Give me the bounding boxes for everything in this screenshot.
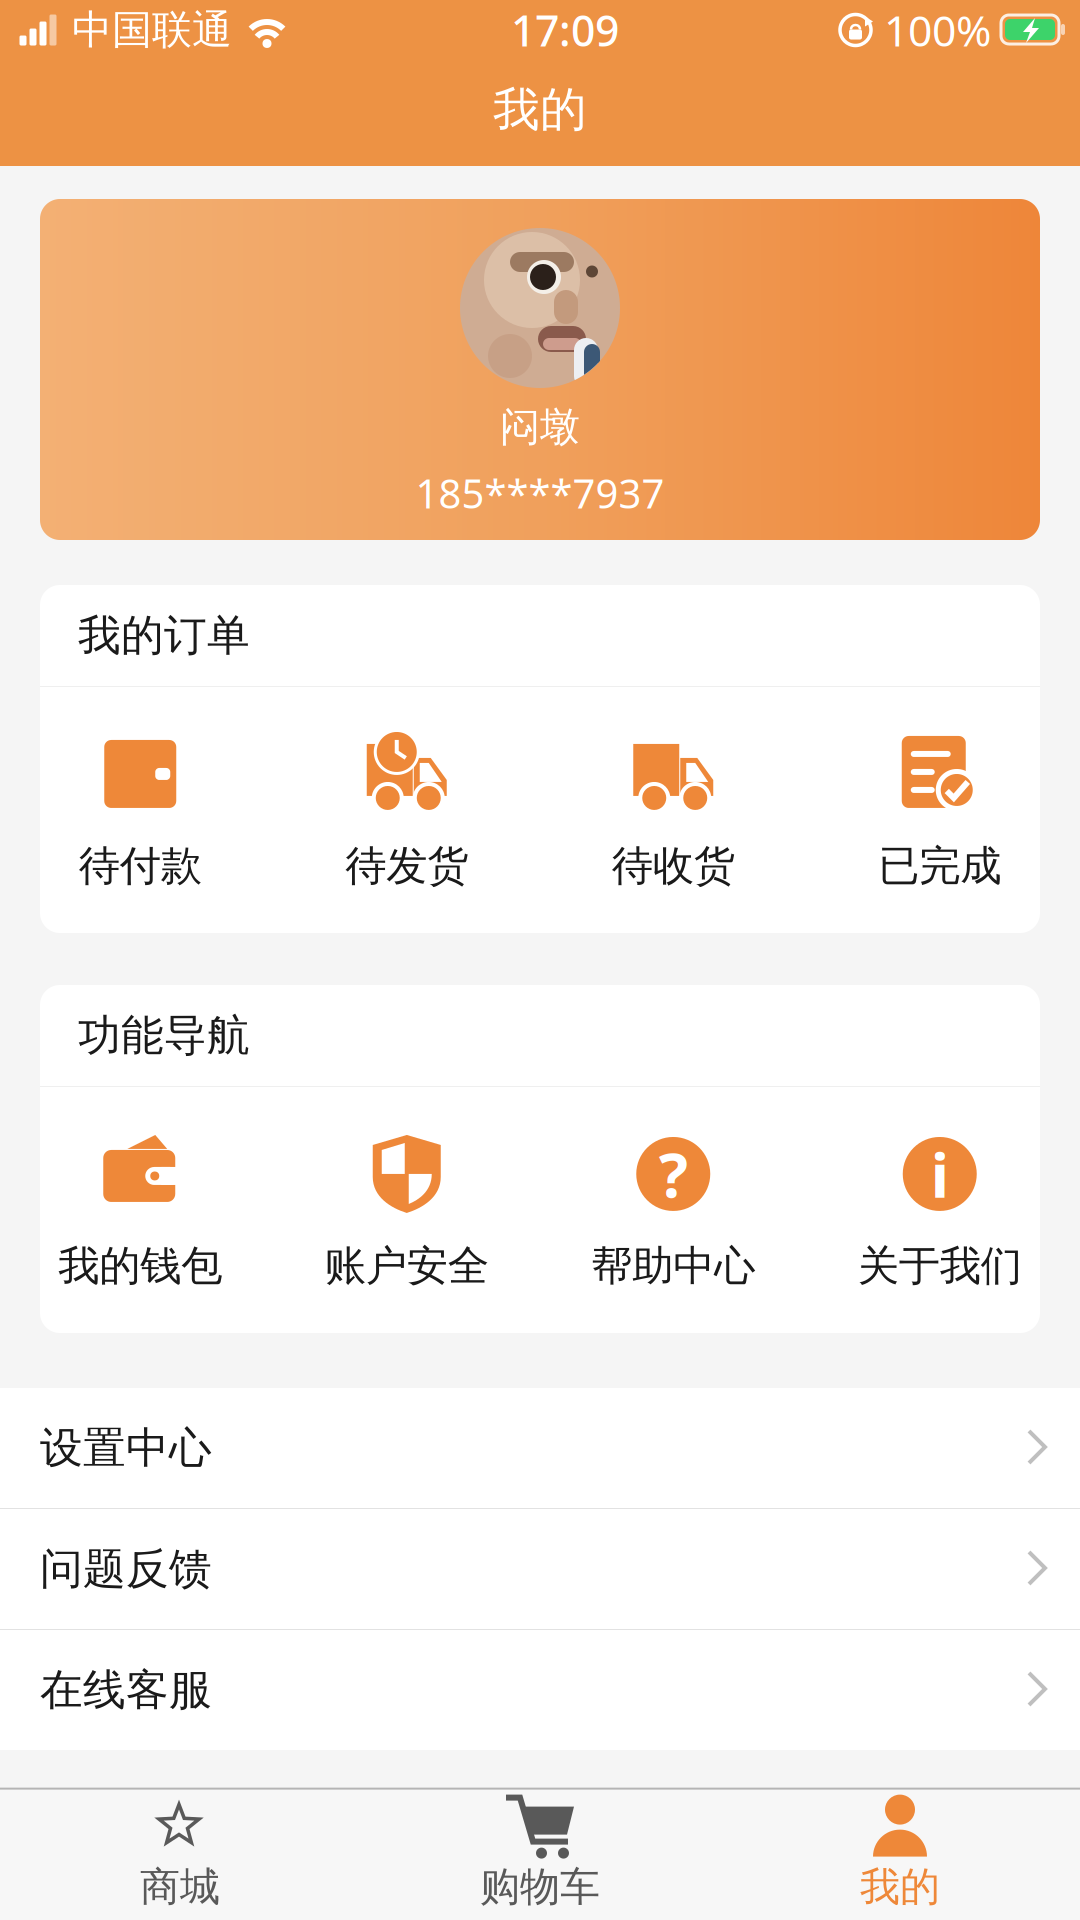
staticText: 在线客服 (40, 1663, 212, 1717)
staticText: 中国联通 (72, 5, 232, 55)
button[interactable]: 账户安全 (273, 1128, 540, 1292)
button[interactable]: 闷墩 (40, 199, 1040, 540)
button[interactable]: i (806, 1128, 1073, 1292)
button[interactable]: 已完成 (806, 728, 1073, 892)
staticText: 我的 (493, 80, 587, 139)
staticText: 商城 (140, 1862, 220, 1912)
staticText: 185****7937 (415, 466, 664, 519)
staticText: 17:09 (511, 2, 619, 58)
staticText: 我的钱包 (58, 1240, 222, 1292)
staticText: i (931, 1133, 949, 1215)
button[interactable]: 待发货 (273, 728, 540, 892)
button[interactable]: 问题反馈 (0, 1509, 1080, 1630)
button[interactable]: ? (540, 1128, 806, 1292)
button[interactable]: 待收货 (540, 728, 806, 892)
button[interactable]: 设置中心 (0, 1388, 1080, 1509)
button[interactable]: 购物车 (360, 1790, 720, 1920)
staticText: 我的订单 (78, 609, 250, 662)
staticText: 设置中心 (40, 1421, 212, 1475)
staticText: 100% (884, 2, 991, 58)
staticText: 待付款 (79, 840, 202, 892)
button[interactable]: 商城 (0, 1790, 360, 1920)
staticText: 问题反馈 (40, 1542, 212, 1596)
button[interactable]: 待付款 (7, 728, 273, 892)
staticText: 我的 (860, 1862, 940, 1912)
staticText: 帮助中心 (591, 1240, 755, 1292)
button[interactable]: 我的钱包 (7, 1128, 273, 1292)
staticText: 已完成 (878, 840, 1001, 892)
button[interactable]: 我的 (720, 1790, 1080, 1920)
staticText: 账户安全 (325, 1240, 489, 1292)
staticText: 购物车 (480, 1862, 600, 1912)
staticText: 功能导航 (78, 1009, 250, 1062)
staticText: ? (659, 1133, 688, 1215)
button[interactable]: 在线客服 (0, 1630, 1080, 1750)
staticText: 闷墩 (500, 402, 580, 452)
staticText: 待收货 (612, 840, 735, 892)
staticText: 关于我们 (858, 1240, 1022, 1292)
staticText: 待发货 (345, 840, 468, 892)
